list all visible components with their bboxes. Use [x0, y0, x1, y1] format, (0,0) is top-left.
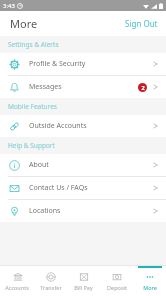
staticText: Bill Pay [74, 284, 93, 291]
button[interactable]: Deposit [100, 266, 133, 296]
button[interactable]: Bill Pay [67, 266, 100, 296]
other: Profile and Security [9, 59, 20, 70]
button[interactable]: Profile and Security [0, 53, 166, 75]
staticText: More [143, 284, 157, 291]
staticText: Settings & Alerts [8, 40, 59, 49]
button[interactable]: More [133, 266, 166, 296]
staticText: Contact Us / FAQs [29, 183, 153, 193]
other: Locations [9, 206, 20, 217]
staticText: About [29, 160, 153, 170]
other: Outside Accounts [9, 121, 20, 132]
staticText: Messages [29, 82, 138, 92]
button[interactable]: Messages [0, 76, 166, 98]
staticText: Accounts [5, 284, 29, 291]
staticText: 3:43 [3, 2, 15, 10]
other: About [9, 160, 20, 171]
staticText: Sign Out [125, 18, 158, 29]
staticText: Profile & Security [29, 59, 153, 69]
button[interactable]: Outside Accounts [0, 115, 166, 137]
button[interactable]: Contact Us [0, 177, 166, 199]
staticText: Transfer [40, 284, 62, 291]
staticText: More [10, 16, 38, 31]
other: Contact Us [9, 183, 20, 194]
button[interactable]: Transfer [34, 266, 67, 296]
button[interactable]: About [0, 154, 166, 176]
staticText: Mobile Features [8, 102, 57, 111]
other: Messages [9, 82, 20, 93]
staticText: Locations [29, 206, 153, 216]
staticText: Deposit [107, 284, 127, 291]
button[interactable]: Sign Out [117, 13, 166, 34]
button[interactable]: Accounts [0, 266, 34, 296]
button[interactable]: Locations [0, 200, 166, 222]
staticText: 2 [141, 84, 145, 91]
staticText: Help & Support [8, 141, 55, 150]
staticText: Outside Accounts [29, 121, 153, 131]
